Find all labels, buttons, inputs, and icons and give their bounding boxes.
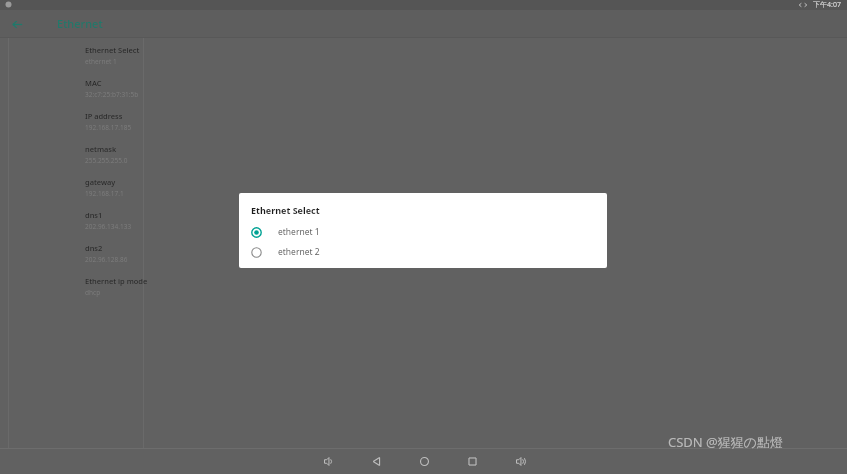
- button[interactable]: IP address: [85, 109, 205, 142]
- staticText: 32:c7:25:b7:31:5b: [85, 90, 139, 99]
- staticText: 192.168.17.1: [85, 189, 124, 198]
- button[interactable]: dns1: [85, 208, 205, 241]
- button[interactable]: ethernet 2: [239, 242, 607, 262]
- staticText: netmask: [85, 144, 117, 154]
- staticText: IP address: [85, 111, 123, 121]
- button[interactable]: Ethernet Select: [85, 43, 205, 76]
- staticText: dhcp: [85, 288, 101, 297]
- button[interactable]: Volume down: [313, 449, 343, 473]
- staticText: 202.96.128.86: [85, 255, 128, 264]
- button[interactable]: Ethernet ip mode: [85, 274, 205, 307]
- button[interactable]: Home: [409, 449, 439, 473]
- button[interactable]: dns2: [85, 241, 205, 274]
- staticText: Ethernet: [57, 16, 103, 31]
- staticText: 255.255.255.0: [85, 156, 128, 165]
- button[interactable]: netmask: [85, 142, 205, 175]
- button[interactable]: ethernet 1: [239, 222, 607, 242]
- staticText: ethernet 1: [85, 57, 117, 66]
- staticText: ethernet 1: [278, 226, 320, 238]
- staticText: 202.96.134.133: [85, 222, 132, 231]
- staticText: dns2: [85, 243, 103, 253]
- button[interactable]: Back: [6, 13, 28, 35]
- staticText: ethernet 2: [278, 246, 320, 258]
- staticText: Ethernet Select: [85, 45, 140, 55]
- button[interactable]: gateway: [85, 175, 205, 208]
- button[interactable]: Volume up: [505, 449, 535, 473]
- staticText: MAC: [85, 78, 102, 88]
- staticText: CSDN @猩猩の點燈: [668, 433, 784, 451]
- staticText: gateway: [85, 177, 116, 187]
- staticText: Ethernet Select: [251, 204, 320, 216]
- button[interactable]: MAC: [85, 76, 205, 109]
- button[interactable]: Back: [361, 449, 391, 473]
- staticText: Ethernet ip mode: [85, 276, 148, 286]
- staticText: 下午4:07: [813, 0, 841, 10]
- button[interactable]: Recents: [457, 449, 487, 473]
- staticText: dns1: [85, 210, 103, 220]
- staticText: 192.168.17.185: [85, 123, 132, 132]
